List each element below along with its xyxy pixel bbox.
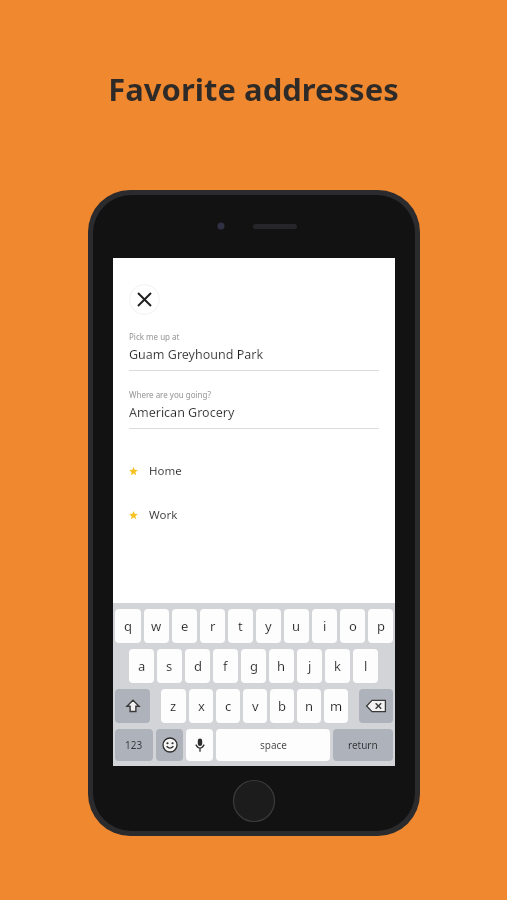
- staticText: American Grocery: [129, 404, 235, 421]
- button[interactable]: y: [256, 609, 281, 643]
- staticText: b: [278, 697, 286, 715]
- button[interactable]: j: [297, 649, 322, 683]
- button[interactable]: t: [228, 609, 253, 643]
- button[interactable]: w: [144, 609, 169, 643]
- button[interactable]: k: [325, 649, 350, 683]
- staticText: i: [323, 617, 327, 635]
- button[interactable]: Voice input: [186, 729, 213, 761]
- button[interactable]: m: [324, 689, 348, 723]
- button[interactable]: Pick me up at: [129, 331, 379, 371]
- staticText: y: [265, 617, 272, 635]
- button[interactable]: l: [353, 649, 378, 683]
- staticText: r: [210, 617, 216, 635]
- button[interactable]: e: [172, 609, 197, 643]
- button[interactable]: return: [333, 729, 393, 761]
- staticText: p: [377, 617, 385, 635]
- button[interactable]: x: [189, 689, 213, 723]
- staticText: f: [223, 657, 228, 675]
- button[interactable]: s: [157, 649, 182, 683]
- button[interactable]: Shift: [115, 689, 150, 723]
- button[interactable]: z: [161, 689, 186, 723]
- button[interactable]: Backspace: [359, 689, 393, 723]
- button[interactable]: Where are you going?: [129, 389, 379, 429]
- staticText: m: [330, 697, 343, 715]
- staticText: q: [124, 617, 132, 635]
- button[interactable]: d: [185, 649, 210, 683]
- staticText: s: [166, 657, 173, 675]
- staticText: Favorite addresses: [108, 68, 399, 110]
- staticText: Guam Greyhound Park: [129, 346, 264, 363]
- button[interactable]: i: [312, 609, 337, 643]
- staticText: e: [181, 617, 189, 635]
- staticText: g: [250, 657, 258, 675]
- staticText: l: [364, 657, 368, 675]
- staticText: w: [151, 617, 162, 635]
- button[interactable]: v: [243, 689, 267, 723]
- button[interactable]: Close: [129, 284, 160, 315]
- button[interactable]: c: [216, 689, 240, 723]
- staticText: d: [194, 657, 202, 675]
- staticText: v: [252, 697, 259, 715]
- staticText: x: [198, 697, 205, 715]
- button[interactable]: Work: [113, 493, 395, 537]
- staticText: Where are you going?: [129, 389, 211, 400]
- staticText: 123: [125, 738, 143, 752]
- staticText: z: [170, 697, 177, 715]
- staticText: t: [238, 617, 243, 635]
- button[interactable]: h: [269, 649, 294, 683]
- staticText: return: [348, 738, 378, 752]
- button[interactable]: b: [270, 689, 294, 723]
- staticText: a: [138, 657, 146, 675]
- button[interactable]: r: [200, 609, 225, 643]
- staticText: k: [334, 657, 341, 675]
- button[interactable]: o: [340, 609, 365, 643]
- button[interactable]: 123: [115, 729, 153, 761]
- staticText: Home: [149, 463, 182, 479]
- staticText: n: [305, 697, 314, 715]
- button[interactable]: u: [284, 609, 309, 643]
- button[interactable]: p: [368, 609, 393, 643]
- button[interactable]: Emoji: [156, 729, 183, 761]
- staticText: c: [225, 697, 232, 715]
- staticText: o: [349, 617, 357, 635]
- staticText: j: [308, 657, 312, 675]
- button[interactable]: q: [115, 609, 141, 643]
- button[interactable]: Home: [113, 449, 395, 493]
- staticText: u: [292, 617, 301, 635]
- button[interactable]: a: [129, 649, 154, 683]
- staticText: space: [260, 738, 287, 752]
- staticText: Work: [149, 507, 178, 523]
- button[interactable]: g: [241, 649, 266, 683]
- staticText: Pick me up at: [129, 331, 180, 342]
- button[interactable]: f: [213, 649, 238, 683]
- staticText: h: [277, 657, 286, 675]
- button[interactable]: n: [297, 689, 321, 723]
- button[interactable]: space: [216, 729, 330, 761]
